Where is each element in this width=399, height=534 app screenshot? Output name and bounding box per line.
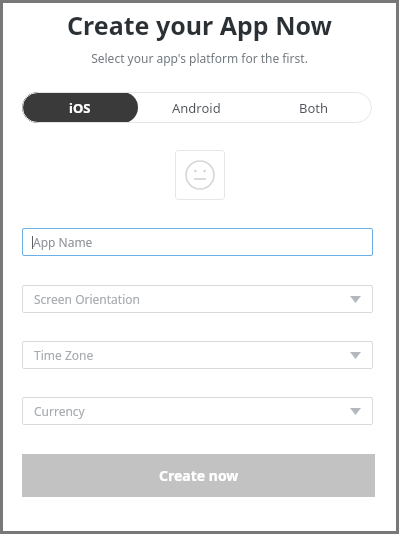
button[interactable]: iOS [22, 92, 138, 123]
button[interactable]: Android [138, 92, 255, 123]
staticText: Create now [159, 466, 239, 485]
staticText: Create your App Now [3, 8, 396, 42]
button[interactable]: Currency [22, 397, 373, 425]
staticText: Both [299, 99, 329, 117]
button[interactable]: Time Zone [22, 341, 373, 369]
button[interactable]: Choose app icon [175, 150, 225, 200]
staticText: Android [172, 99, 221, 117]
staticText: Select your app's platform for the first… [3, 50, 396, 66]
staticText: iOS [69, 99, 91, 117]
staticText: Currency [34, 403, 85, 419]
staticText: Screen Orientation [34, 291, 140, 307]
button[interactable]: Both [255, 92, 372, 123]
button[interactable]: App Name [22, 228, 373, 256]
button[interactable]: Create now [22, 454, 375, 497]
staticText: Time Zone [34, 347, 94, 363]
staticText: App Name [33, 234, 93, 250]
button[interactable]: Screen Orientation [22, 285, 373, 313]
